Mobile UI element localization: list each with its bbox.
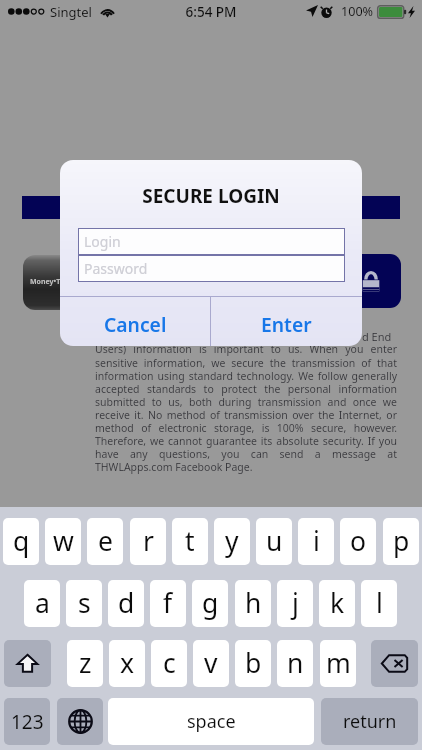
staticText: m bbox=[326, 645, 351, 681]
button[interactable]: p bbox=[383, 518, 419, 565]
button[interactable]: u bbox=[256, 518, 292, 565]
staticText: a bbox=[35, 585, 50, 621]
button[interactable]: m bbox=[320, 640, 356, 687]
button[interactable]: e bbox=[87, 518, 123, 565]
staticText: d End bbox=[362, 329, 392, 344]
button[interactable]: Change keyboard bbox=[57, 698, 103, 745]
button[interactable]: d bbox=[108, 580, 144, 627]
staticText: Password bbox=[84, 259, 148, 278]
button[interactable]: a bbox=[24, 580, 60, 627]
staticText: space bbox=[187, 709, 236, 734]
staticText: p bbox=[393, 523, 410, 559]
staticText: b bbox=[245, 645, 262, 681]
staticText: 100% bbox=[341, 3, 374, 20]
button[interactable]: r bbox=[130, 518, 166, 565]
staticText: Enter bbox=[261, 311, 312, 337]
button[interactable]: b bbox=[235, 640, 271, 687]
staticText: SECURE LOGIN bbox=[60, 183, 362, 209]
staticText: i bbox=[313, 523, 320, 559]
button[interactable]: x bbox=[109, 640, 145, 687]
button[interactable]: w bbox=[45, 518, 81, 565]
staticText: s bbox=[78, 585, 91, 621]
button[interactable]: t bbox=[172, 518, 208, 565]
staticText: q bbox=[13, 523, 30, 559]
staticText: e bbox=[98, 523, 113, 559]
button[interactable]: space bbox=[108, 698, 314, 745]
button[interactable]: Backspace bbox=[371, 640, 418, 687]
staticText: Login bbox=[84, 232, 121, 251]
button[interactable]: Shift bbox=[4, 640, 51, 687]
staticText: u bbox=[266, 523, 283, 559]
button[interactable]: 123 bbox=[4, 698, 50, 745]
staticText: Users) information is important to us. W… bbox=[95, 342, 397, 474]
button[interactable]: n bbox=[277, 640, 313, 687]
button[interactable]: f bbox=[150, 580, 186, 627]
staticText: d bbox=[118, 585, 135, 621]
staticText: x bbox=[120, 645, 135, 681]
staticText: Singtel bbox=[50, 3, 92, 21]
button[interactable]: j bbox=[277, 580, 313, 627]
staticText: r bbox=[143, 523, 154, 559]
button[interactable]: k bbox=[319, 580, 355, 627]
button[interactable]: y bbox=[214, 518, 250, 565]
button[interactable]: v bbox=[193, 640, 229, 687]
staticText: w bbox=[53, 523, 74, 559]
staticText: 123 bbox=[11, 709, 44, 735]
staticText: return bbox=[343, 709, 397, 734]
button[interactable]: q bbox=[3, 518, 39, 565]
staticText: h bbox=[245, 585, 262, 621]
button[interactable]: z bbox=[67, 640, 103, 687]
button[interactable]: c bbox=[151, 640, 187, 687]
staticText: t bbox=[185, 523, 195, 559]
staticText: k bbox=[330, 585, 345, 621]
staticText: Money•Tracker bbox=[30, 277, 82, 287]
staticText: c bbox=[163, 645, 176, 681]
staticText: v bbox=[204, 645, 218, 681]
button[interactable]: l bbox=[361, 580, 397, 627]
staticText: Cancel bbox=[104, 311, 167, 337]
staticText: 6:54 PM bbox=[0, 3, 422, 21]
button[interactable]: Enter bbox=[211, 297, 362, 346]
staticText: g bbox=[202, 585, 219, 621]
button[interactable]: g bbox=[192, 580, 228, 627]
staticText: j bbox=[292, 585, 299, 621]
button[interactable]: Cancel bbox=[60, 297, 210, 346]
staticText: l bbox=[376, 585, 383, 621]
button[interactable]: o bbox=[340, 518, 376, 565]
staticText: f bbox=[163, 585, 173, 621]
staticText: n bbox=[287, 645, 304, 681]
button[interactable]: h bbox=[235, 580, 271, 627]
button[interactable]: return bbox=[321, 698, 418, 745]
button[interactable]: s bbox=[66, 580, 102, 627]
button[interactable]: i bbox=[298, 518, 334, 565]
staticText: z bbox=[79, 645, 92, 681]
staticText: o bbox=[350, 523, 367, 559]
staticText: y bbox=[225, 523, 239, 559]
